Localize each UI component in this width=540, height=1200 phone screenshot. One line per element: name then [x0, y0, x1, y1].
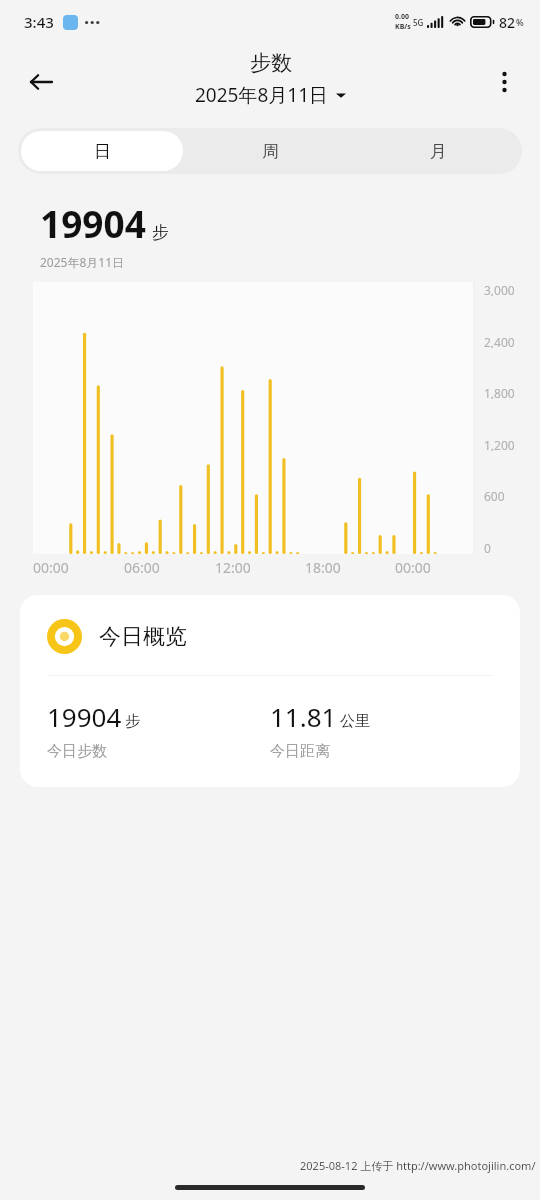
staticText: 19904 [47, 699, 122, 734]
staticText: 1,200 [484, 437, 515, 451]
staticText: 00:00 [395, 558, 431, 577]
staticText: 月 [430, 141, 447, 162]
staticText: 3:43 [24, 12, 54, 32]
staticText: 00:00 [33, 558, 69, 577]
staticText: 步 [152, 222, 169, 243]
staticText: 周 [262, 141, 279, 162]
button[interactable]: 周 [189, 131, 351, 171]
staticText: 2,400 [484, 334, 515, 348]
staticText: 19904 [40, 198, 146, 248]
button[interactable]: Back [18, 59, 64, 105]
staticText: 今日步数 [47, 742, 107, 761]
staticText: 82 [499, 13, 516, 32]
staticText: 3,000 [484, 282, 515, 296]
button[interactable]: 日 [21, 131, 183, 171]
staticText: 步数 [250, 50, 292, 76]
staticText: % [516, 16, 524, 28]
staticText: 0.00 [395, 12, 409, 22]
staticText: 18:00 [305, 558, 341, 577]
staticText: KB/s [395, 22, 411, 32]
staticText: 2025年8月11日 [195, 82, 329, 108]
staticText: 11.81 [270, 699, 337, 734]
staticText: 步 [125, 712, 140, 731]
button[interactable]: 月 [357, 131, 519, 171]
staticText: 12:00 [215, 558, 251, 577]
button[interactable]: More options [482, 60, 526, 104]
staticText: 日 [94, 141, 111, 162]
staticText: 公里 [340, 712, 370, 731]
staticText: 今日概览 [99, 623, 187, 651]
staticText: 2025年8月11日 [40, 254, 125, 270]
staticText: 06:00 [124, 558, 160, 577]
button[interactable]: 今日概览 [20, 595, 520, 787]
staticText: 2025-08-12 上传于 http://www.photojilin.com… [300, 1158, 536, 1173]
staticText: 今日距离 [270, 742, 330, 761]
staticText: 600 [484, 488, 505, 502]
staticText: 0 [484, 540, 491, 554]
button[interactable]: 2025年8月11日 [191, 80, 350, 110]
staticText: 1,800 [484, 385, 515, 399]
staticText: 5G [413, 17, 424, 28]
